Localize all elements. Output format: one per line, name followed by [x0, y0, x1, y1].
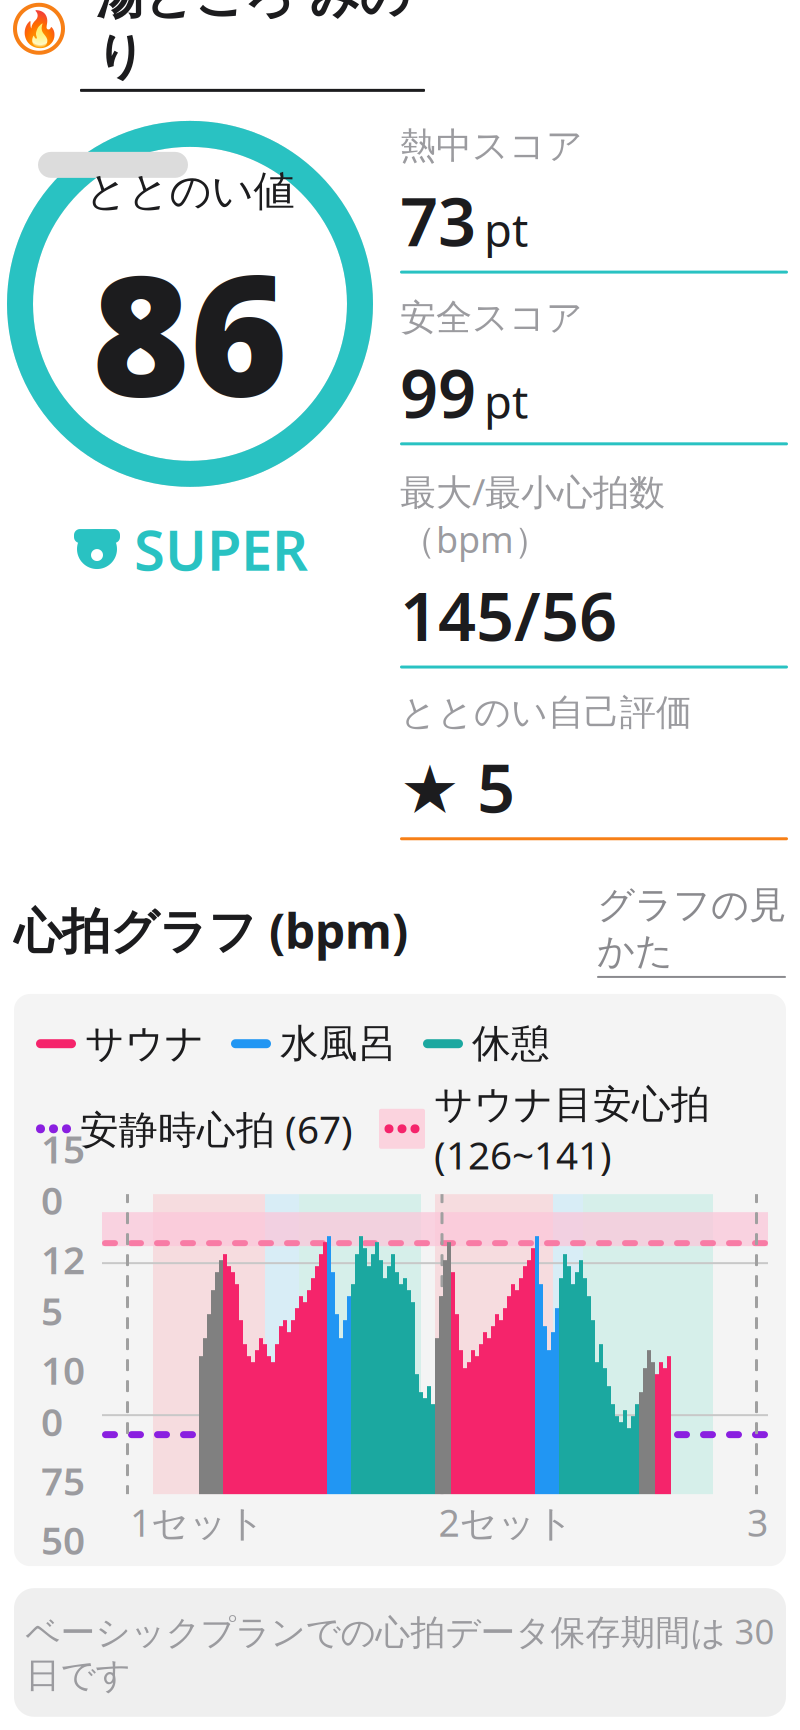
- staticText: 75: [41, 1455, 85, 1506]
- button[interactable]: グラフの見かた: [597, 882, 786, 978]
- staticText: ととのい自己評価: [400, 690, 692, 735]
- staticText: 最大/最小心拍数（bpm）: [400, 467, 665, 563]
- staticText: ととのい値: [85, 166, 294, 217]
- staticText: 99: [400, 348, 476, 436]
- staticText: 3: [747, 1497, 768, 1547]
- staticText: 50: [41, 1514, 85, 1565]
- staticText: 安静時心拍 (67): [80, 1103, 353, 1154]
- staticText: pt: [484, 371, 528, 431]
- staticText: 73: [400, 176, 476, 265]
- staticText: サウナ目安心拍 (126~141): [434, 1077, 710, 1180]
- staticText: ベーシックプランでの心拍データ保存期間は 30日です: [25, 1608, 774, 1697]
- staticText: 休憩: [472, 1020, 550, 1067]
- staticText: 熱中スコア: [400, 124, 583, 168]
- staticText: 100: [41, 1344, 85, 1447]
- staticText: 水風呂: [280, 1020, 397, 1067]
- staticText: 湯どころ みのり: [95, 0, 409, 87]
- staticText: 🔥: [17, 9, 60, 49]
- staticText: 150: [41, 1123, 85, 1225]
- staticText: 心拍グラフ (bpm): [14, 898, 408, 962]
- staticText: 86: [92, 221, 288, 442]
- staticText: 125: [41, 1233, 85, 1336]
- staticText: 2セット: [438, 1497, 573, 1547]
- button[interactable]: 湯どころ みのり: [80, 0, 425, 92]
- staticText: 145/56: [400, 571, 617, 659]
- staticText: SUPER: [134, 512, 308, 586]
- staticText: ★ 5: [400, 743, 515, 831]
- staticText: 1セット: [130, 1497, 265, 1547]
- staticText: サウナ: [85, 1020, 205, 1067]
- staticText: グラフの見かた: [597, 882, 786, 974]
- staticText: pt: [484, 199, 528, 260]
- staticText: 安全スコア: [400, 296, 583, 340]
